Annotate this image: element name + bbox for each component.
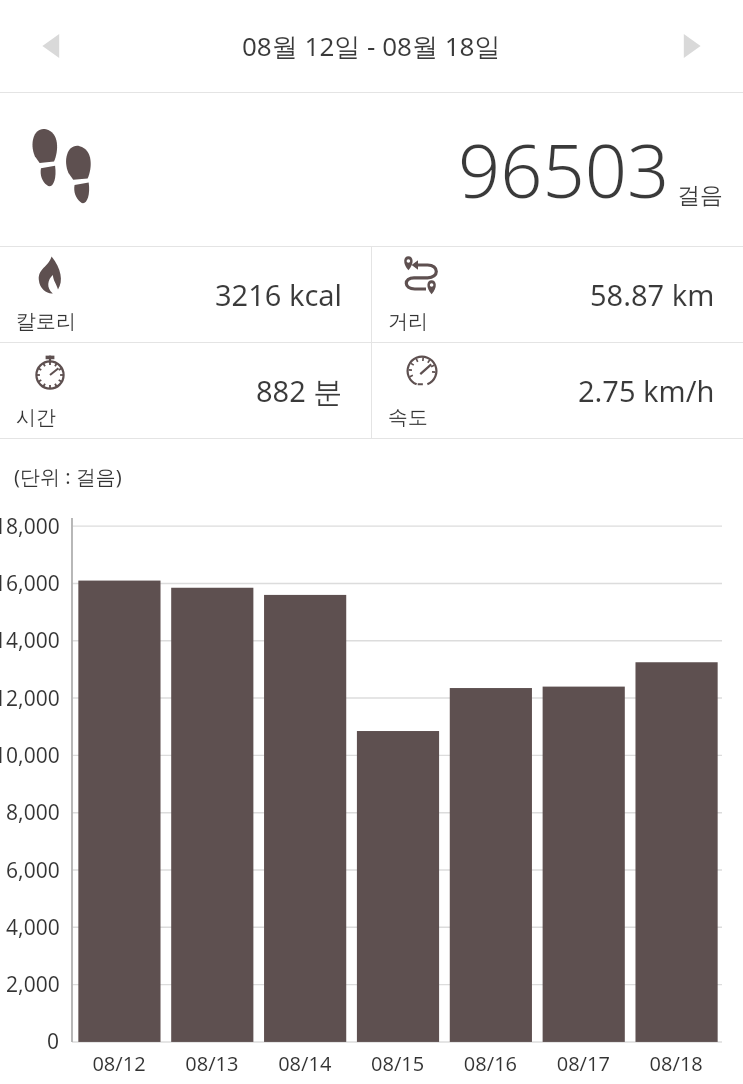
staticText: 96503 (458, 119, 670, 220)
staticText: 08월 12일 - 08월 18일 (242, 28, 501, 64)
button[interactable]: 칼로리 (0, 247, 371, 342)
button[interactable]: 속도 (372, 343, 743, 438)
button[interactable]: 96503 (0, 93, 743, 246)
staticText: 3216 kcal (215, 275, 343, 314)
staticText: 걸음 (677, 181, 723, 210)
button[interactable]: 시간 (0, 343, 371, 438)
staticText: 시간 (16, 405, 56, 430)
staticText: 속도 (388, 405, 428, 430)
button[interactable]: Next week (663, 18, 719, 74)
button[interactable]: Previous week (24, 18, 80, 74)
staticText: 거리 (388, 309, 428, 334)
staticText: 882 분 (256, 371, 343, 411)
staticText: 칼로리 (16, 309, 76, 334)
button[interactable]: 거리 (372, 247, 743, 342)
staticText: 2.75 km/h (578, 371, 715, 410)
staticText: 58.87 km (590, 275, 715, 314)
